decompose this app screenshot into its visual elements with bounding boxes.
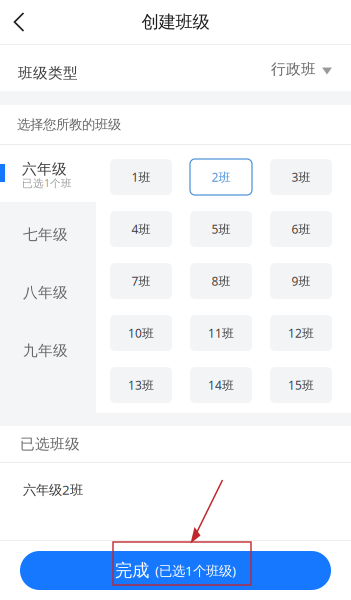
button[interactable]: 完成 [20, 551, 331, 590]
button[interactable]: 1班 [110, 159, 172, 195]
staticText: 六年级2班 [23, 481, 83, 498]
staticText: 行政班 [271, 60, 316, 78]
button[interactable]: 15班 [270, 367, 332, 403]
button[interactable]: 班级类型 [0, 45, 351, 91]
staticText: 完成 [115, 560, 149, 581]
staticText: 八年级 [23, 283, 68, 301]
button[interactable]: 6班 [270, 211, 332, 247]
staticText: 13班 [128, 377, 154, 393]
staticText: 5班 [211, 221, 230, 237]
staticText: 选择您所教的班级 [17, 116, 121, 133]
button[interactable]: 8班 [190, 263, 252, 299]
button[interactable]: 3班 [270, 159, 332, 195]
button[interactable]: 5班 [190, 211, 252, 247]
button[interactable]: 七年级 [0, 202, 96, 260]
button[interactable]: 2班 [190, 159, 252, 195]
staticText: 6班 [291, 221, 310, 237]
staticText: (已选1个班级) [149, 562, 236, 579]
staticText: 已选班级 [20, 435, 80, 453]
button[interactable]: 14班 [190, 367, 252, 403]
button[interactable]: 9班 [270, 263, 332, 299]
staticText: 六年级 [22, 160, 67, 178]
button[interactable]: 7班 [110, 263, 172, 299]
button[interactable]: 九年级 [0, 318, 96, 376]
staticText: 9班 [291, 273, 310, 289]
button[interactable]: 10班 [110, 315, 172, 351]
staticText: 3班 [291, 169, 310, 185]
staticText: 已选1个班 [22, 176, 72, 190]
button[interactable]: 11班 [190, 315, 252, 351]
staticText: 九年级 [23, 341, 68, 359]
staticText: 4班 [131, 221, 150, 237]
staticText: 7班 [131, 273, 150, 289]
staticText: 2班 [211, 169, 230, 185]
button[interactable]: 12班 [270, 315, 332, 351]
staticText: 14班 [208, 377, 234, 393]
staticText: 七年级 [23, 225, 68, 243]
staticText: 1班 [131, 169, 150, 185]
staticText: 8班 [211, 273, 230, 289]
button[interactable]: 13班 [110, 367, 172, 403]
staticText: 班级类型 [18, 64, 78, 82]
button[interactable]: Back [0, 0, 38, 44]
staticText: 创建班级 [141, 11, 209, 33]
staticText: 15班 [288, 377, 314, 393]
button[interactable]: 八年级 [0, 260, 96, 318]
staticText: 12班 [288, 325, 314, 341]
staticText: 11班 [208, 325, 234, 341]
button[interactable]: 4班 [110, 211, 172, 247]
button[interactable]: 六年级 [0, 145, 96, 202]
staticText: 10班 [128, 325, 154, 341]
